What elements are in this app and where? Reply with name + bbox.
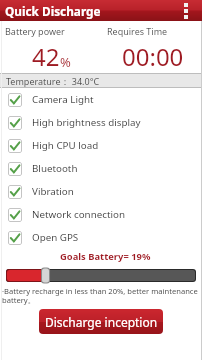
staticText: Discharge inception: [45, 314, 158, 330]
staticText: Goals Battery= 19%: [60, 250, 151, 263]
staticText: Bluetooth: [32, 162, 78, 175]
staticText: Battery power: [5, 25, 65, 37]
staticText: High CPU load: [32, 139, 99, 152]
button[interactable]: Discharge inception: [39, 309, 163, 334]
staticText: High brightness display: [32, 116, 141, 129]
staticText: ·Battery recharge in less than 20%, bett…: [2, 286, 202, 305]
staticText: 00:00: [122, 40, 184, 73]
staticText: Network connection: [32, 208, 125, 221]
button[interactable]: Vibration: [0, 180, 202, 203]
button[interactable]: Camera Light: [0, 88, 202, 111]
button[interactable]: High brightness display: [0, 111, 202, 134]
button[interactable]: High CPU load: [0, 134, 202, 157]
staticText: Camera Light: [32, 93, 94, 106]
button[interactable]: Open GPS: [0, 226, 202, 249]
button[interactable]: Goal battery slider: [0, 267, 202, 285]
staticText: Temperature： 34.0°C: [6, 75, 100, 87]
staticText: %: [60, 53, 71, 71]
staticText: Open GPS: [32, 231, 79, 244]
staticText: Quick Discharge: [5, 3, 101, 19]
button[interactable]: Bluetooth: [0, 157, 202, 180]
button[interactable]: Network connection: [0, 203, 202, 226]
staticText: Vibration: [32, 185, 74, 198]
staticText: 42: [32, 40, 60, 73]
button[interactable]: More options: [178, 0, 193, 21]
staticText: Requires Time: [107, 25, 168, 37]
